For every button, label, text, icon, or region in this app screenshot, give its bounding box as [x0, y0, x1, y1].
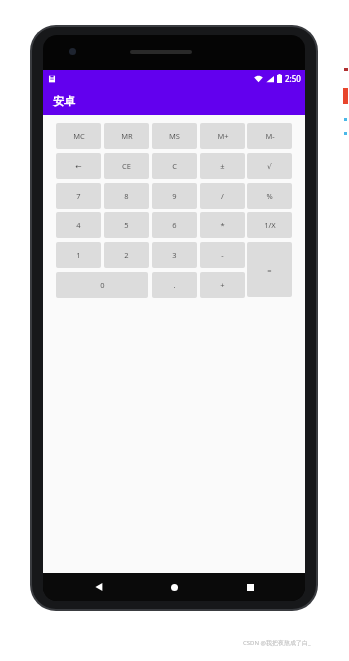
button[interactable]: = — [247, 242, 292, 297]
button[interactable]: / — [200, 183, 245, 209]
staticText: 4 — [76, 220, 81, 230]
staticText: 0 — [100, 280, 105, 290]
staticText: 9 — [172, 191, 177, 201]
button[interactable]: Back — [79, 573, 119, 601]
staticText: + — [220, 280, 225, 290]
button[interactable]: 0 — [56, 272, 148, 298]
staticText: 7 — [76, 191, 81, 201]
button[interactable]: + — [200, 272, 245, 298]
staticText: = — [267, 265, 272, 275]
staticText: 2:50 — [285, 73, 301, 84]
staticText: 安卓 — [53, 94, 75, 108]
button[interactable]: Recent apps — [230, 573, 270, 601]
staticText: MS — [169, 131, 180, 141]
button[interactable]: √ — [247, 153, 292, 179]
button[interactable]: Home — [154, 573, 194, 601]
button[interactable]: CE — [104, 153, 149, 179]
staticText: * — [220, 220, 225, 230]
staticText: - — [221, 250, 224, 260]
staticText: M- — [265, 131, 275, 141]
staticText: MR — [121, 131, 133, 141]
staticText: . — [173, 280, 176, 290]
button[interactable]: M+ — [200, 123, 245, 149]
button[interactable]: * — [200, 212, 245, 238]
staticText: ← — [75, 162, 82, 171]
staticText: % — [266, 191, 273, 201]
staticText: 1/X — [264, 220, 276, 230]
staticText: CSDN @我把夜熬成了白_ — [243, 639, 311, 647]
staticText: CE — [122, 161, 131, 171]
staticText: 1 — [76, 250, 81, 260]
button[interactable]: 7 — [56, 183, 101, 209]
staticText: 8 — [124, 191, 129, 201]
button[interactable]: 9 — [152, 183, 197, 209]
staticText: 3 — [172, 250, 177, 260]
staticText: ± — [220, 161, 225, 171]
staticText: C — [172, 161, 177, 171]
button[interactable]: MC — [56, 123, 101, 149]
button[interactable]: 1/X — [247, 212, 292, 238]
button[interactable]: 6 — [152, 212, 197, 238]
button[interactable]: C — [152, 153, 197, 179]
button[interactable]: 8 — [104, 183, 149, 209]
button[interactable]: 3 — [152, 242, 197, 268]
button[interactable]: 5 — [104, 212, 149, 238]
button[interactable]: ← — [56, 153, 101, 179]
button[interactable]: % — [247, 183, 292, 209]
button[interactable]: M- — [247, 123, 292, 149]
staticText: M+ — [217, 131, 229, 141]
staticText: √ — [267, 162, 272, 171]
button[interactable]: 4 — [56, 212, 101, 238]
button[interactable]: ± — [200, 153, 245, 179]
button[interactable]: MS — [152, 123, 197, 149]
staticText: / — [221, 191, 224, 201]
button[interactable]: 1 — [56, 242, 101, 268]
staticText: MC — [73, 131, 85, 141]
staticText: 6 — [172, 220, 177, 230]
staticText: 5 — [124, 220, 129, 230]
button[interactable]: 2 — [104, 242, 149, 268]
staticText: 2 — [124, 250, 129, 260]
button[interactable]: MR — [104, 123, 149, 149]
